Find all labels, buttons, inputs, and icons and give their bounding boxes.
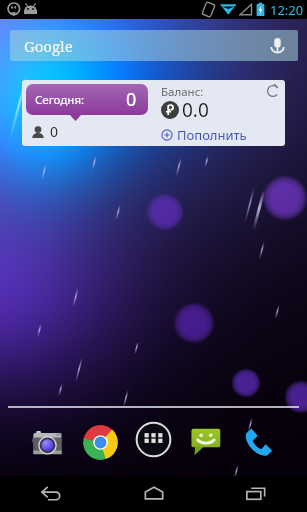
- button[interactable]: Сегодня:: [22, 80, 285, 146]
- staticText: 12:20: [270, 1, 304, 19]
- button[interactable]: Apps: [135, 421, 172, 458]
- button[interactable]: Google: [10, 30, 298, 61]
- button[interactable]: Back: [0, 476, 103, 512]
- button[interactable]: Chrome: [82, 424, 119, 461]
- button[interactable]: Refresh: [266, 84, 280, 98]
- button[interactable]: Phone: [239, 422, 275, 458]
- button[interactable]: Recents: [205, 476, 307, 512]
- button[interactable]: Home: [103, 476, 205, 512]
- button[interactable]: Сегодня:: [26, 84, 148, 115]
- staticText: Пополнить: [177, 126, 247, 144]
- other: Voice search: [268, 36, 287, 55]
- staticText: Сегодня:: [35, 92, 85, 108]
- button[interactable]: Camera: [30, 426, 65, 461]
- staticText: 0: [126, 87, 137, 112]
- staticText: 0: [50, 122, 59, 141]
- staticText: 0.0: [182, 97, 209, 123]
- staticText: Google: [24, 36, 73, 56]
- staticText: Баланс:: [161, 84, 204, 100]
- button[interactable]: Messaging: [187, 422, 224, 459]
- button[interactable]: Пополнить: [161, 126, 247, 144]
